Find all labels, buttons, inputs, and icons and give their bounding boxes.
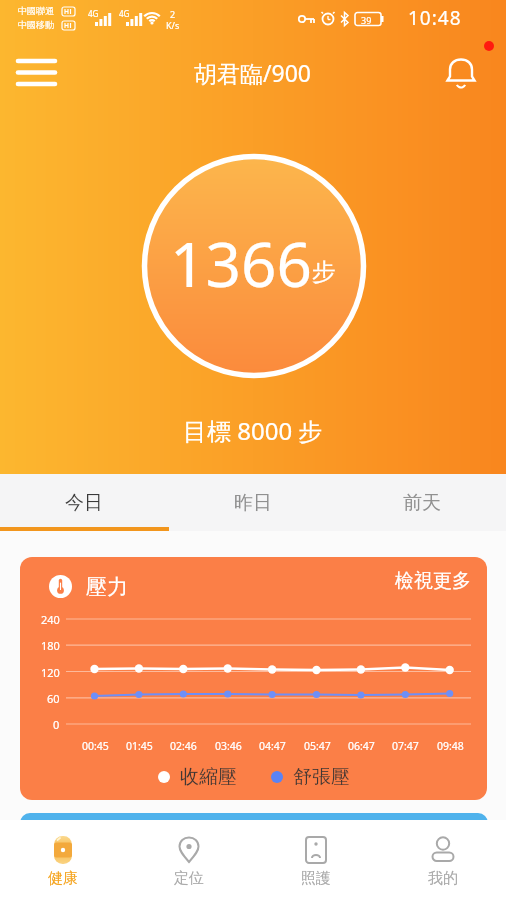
staticText: 2 <box>170 8 176 20</box>
button[interactable] <box>10 50 64 94</box>
staticText: 04:47 <box>259 739 286 753</box>
staticText: 中國移動 <box>18 19 54 30</box>
staticText: 01:45 <box>126 739 153 753</box>
staticText: 步 <box>312 257 336 287</box>
staticText: 180 <box>41 638 60 653</box>
staticText: 39 <box>361 14 372 26</box>
staticText: 60 <box>47 691 60 706</box>
staticText: 120 <box>41 665 60 680</box>
button[interactable]: 定位 <box>126 820 252 900</box>
staticText: 03:46 <box>215 739 242 753</box>
staticText: 10:48 <box>408 5 462 31</box>
staticText: K/s <box>166 19 180 31</box>
staticText: 05:47 <box>304 739 331 753</box>
staticText: 胡君臨/900 <box>194 57 312 88</box>
staticText: 今日 <box>65 491 103 515</box>
staticText: 06:47 <box>348 739 375 753</box>
button[interactable]: 健康 <box>0 820 126 900</box>
staticText: 收縮壓 <box>180 765 237 789</box>
staticText: 壓力 <box>86 574 128 600</box>
button[interactable] <box>438 52 484 98</box>
staticText: 前天 <box>403 491 441 515</box>
staticText: 09:48 <box>437 739 464 753</box>
button[interactable]: 壓力 <box>20 557 487 800</box>
staticText: 0 <box>53 717 60 732</box>
button[interactable]: 昨日 <box>168 474 337 531</box>
staticText: 健康 <box>48 869 78 888</box>
staticText: 中國聯通 <box>18 5 54 16</box>
staticText: 240 <box>41 612 60 627</box>
button[interactable]: 照護 <box>252 820 379 900</box>
staticText: 舒張壓 <box>293 765 350 789</box>
staticText: 4G <box>88 8 99 19</box>
button[interactable]: 今日 <box>0 474 168 531</box>
button[interactable]: 前天 <box>337 474 506 531</box>
staticText: 07:47 <box>392 739 419 753</box>
button[interactable]: 檢視更多 <box>395 569 471 593</box>
staticText: 1366 <box>170 221 312 305</box>
staticText: 目標 8000 步 <box>183 414 323 447</box>
staticText: 4G <box>119 8 130 19</box>
staticText: 昨日 <box>234 491 272 515</box>
staticText: 02:46 <box>170 739 197 753</box>
button[interactable] <box>20 813 488 843</box>
staticText: 照護 <box>301 869 331 888</box>
button[interactable]: 我的 <box>379 820 506 900</box>
staticText: 00:45 <box>82 739 109 753</box>
staticText: 定位 <box>174 869 204 888</box>
staticText: 我的 <box>428 869 458 888</box>
